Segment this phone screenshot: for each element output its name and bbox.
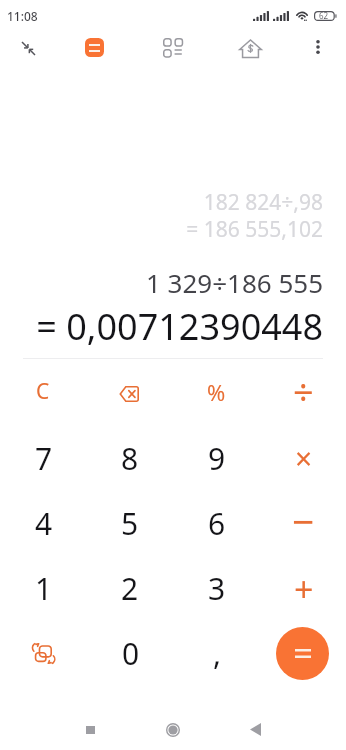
staticText: × [295,438,313,479]
button[interactable]: 0 [86,621,172,686]
staticText: 1 329÷186 555 [0,265,323,300]
button[interactable]: 7 [0,426,86,491]
staticText: 4 [35,503,53,544]
staticText: ÷ [293,367,314,416]
staticText: 5 [121,503,139,544]
button[interactable]: × [259,426,346,491]
button[interactable]: % [172,361,259,426]
staticText: + [294,566,314,612]
button[interactable]: 2 [86,556,172,621]
button[interactable]: 5 [86,491,172,556]
button[interactable]: Unit converter [156,31,188,63]
button[interactable]: Equals [276,627,329,680]
button[interactable]: 1 [0,556,86,621]
button[interactable]: + [259,556,346,621]
button[interactable]: 6 [172,491,259,556]
button[interactable]: , [172,621,259,686]
staticText: 11:08 [7,8,38,24]
button[interactable]: Collapse [13,33,43,63]
staticText: , [213,633,222,674]
staticText: 7 [35,438,53,479]
staticText: 9 [208,438,226,479]
staticText: C [36,377,50,406]
button[interactable]: Backspace [86,361,172,426]
button[interactable]: Mortgage [234,32,266,64]
staticText: = 0,00712390448 [0,302,323,351]
button[interactable]: Back [235,709,275,750]
staticText: 62 [319,10,329,21]
button[interactable]: 8 [86,426,172,491]
staticText: 0 [122,633,140,674]
staticText: − [292,494,315,547]
button[interactable]: Recents [70,709,110,750]
staticText: 8 [121,438,139,479]
staticText: % [207,377,226,407]
button[interactable]: 4 [0,491,86,556]
staticText: = 186 555,102 [0,215,323,244]
staticText: 6 [208,503,226,544]
staticText: 3 [208,568,226,609]
button[interactable]: Convert [0,621,86,686]
button[interactable]: Calculator [85,38,104,57]
button[interactable]: ÷ [259,361,346,426]
staticText: 2 [121,568,139,609]
staticText: 182 824÷,98 [0,188,323,217]
button[interactable]: C [0,361,86,426]
button[interactable]: − [259,491,346,556]
button[interactable]: 3 [172,556,259,621]
button[interactable]: Home [153,709,193,750]
staticText: 1 [35,568,53,609]
button[interactable]: 9 [172,426,259,491]
button[interactable]: More options [304,31,332,63]
